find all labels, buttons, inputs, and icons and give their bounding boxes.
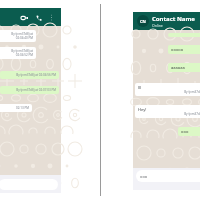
button[interactable]: Video call <box>19 12 30 23</box>
staticText: By tjvm37d8j at 02:04:40 PM <box>1 32 33 40</box>
staticText: By tjvm37d8... <box>138 112 200 116</box>
button[interactable]: ooooo <box>168 45 200 54</box>
button[interactable]: aaaaaa <box>168 63 200 72</box>
button[interactable]: Hey! <box>135 105 200 118</box>
button[interactable]: lll <box>135 83 200 96</box>
button[interactable]: More options <box>46 12 57 23</box>
button[interactable]: ooo <box>178 127 200 136</box>
staticText: By tjvm37d8... <box>138 90 200 94</box>
staticText: By tjvm37d8j at 02:04:52 PM <box>1 49 33 57</box>
staticText: Contact Name <box>152 15 195 23</box>
staticText: aaaaaa <box>171 65 185 70</box>
button[interactable]: By tjvm37d8j at 02:04:40 PM <box>0 30 36 42</box>
staticText: By tjvm37d8j at 02:07:03 PM <box>3 88 56 92</box>
staticText: 02:13 PM <box>1 106 29 110</box>
button[interactable]: ooo <box>136 170 200 182</box>
button[interactable]: By tjvm37d8j at 02:04:52 PM <box>0 47 36 59</box>
button[interactable]: By tjvm37d8j at 02:04:56 PM <box>0 71 59 79</box>
staticText: ooo <box>181 129 189 134</box>
staticText: ooooo <box>171 47 184 52</box>
button[interactable]: CN <box>133 12 200 30</box>
staticText: ooo <box>140 174 148 179</box>
staticText: By tjvm37d8j at 02:04:56 PM <box>3 73 56 77</box>
staticText: Online <box>152 23 163 28</box>
staticText: CN <box>140 19 146 24</box>
staticText: Hey! <box>138 107 147 112</box>
button[interactable]: By tjvm37d8j at 02:07:03 PM <box>0 86 59 94</box>
button[interactable]: 02:13 PM <box>0 104 32 112</box>
button[interactable]: Voice call <box>33 12 44 23</box>
staticText: lll <box>138 85 142 90</box>
